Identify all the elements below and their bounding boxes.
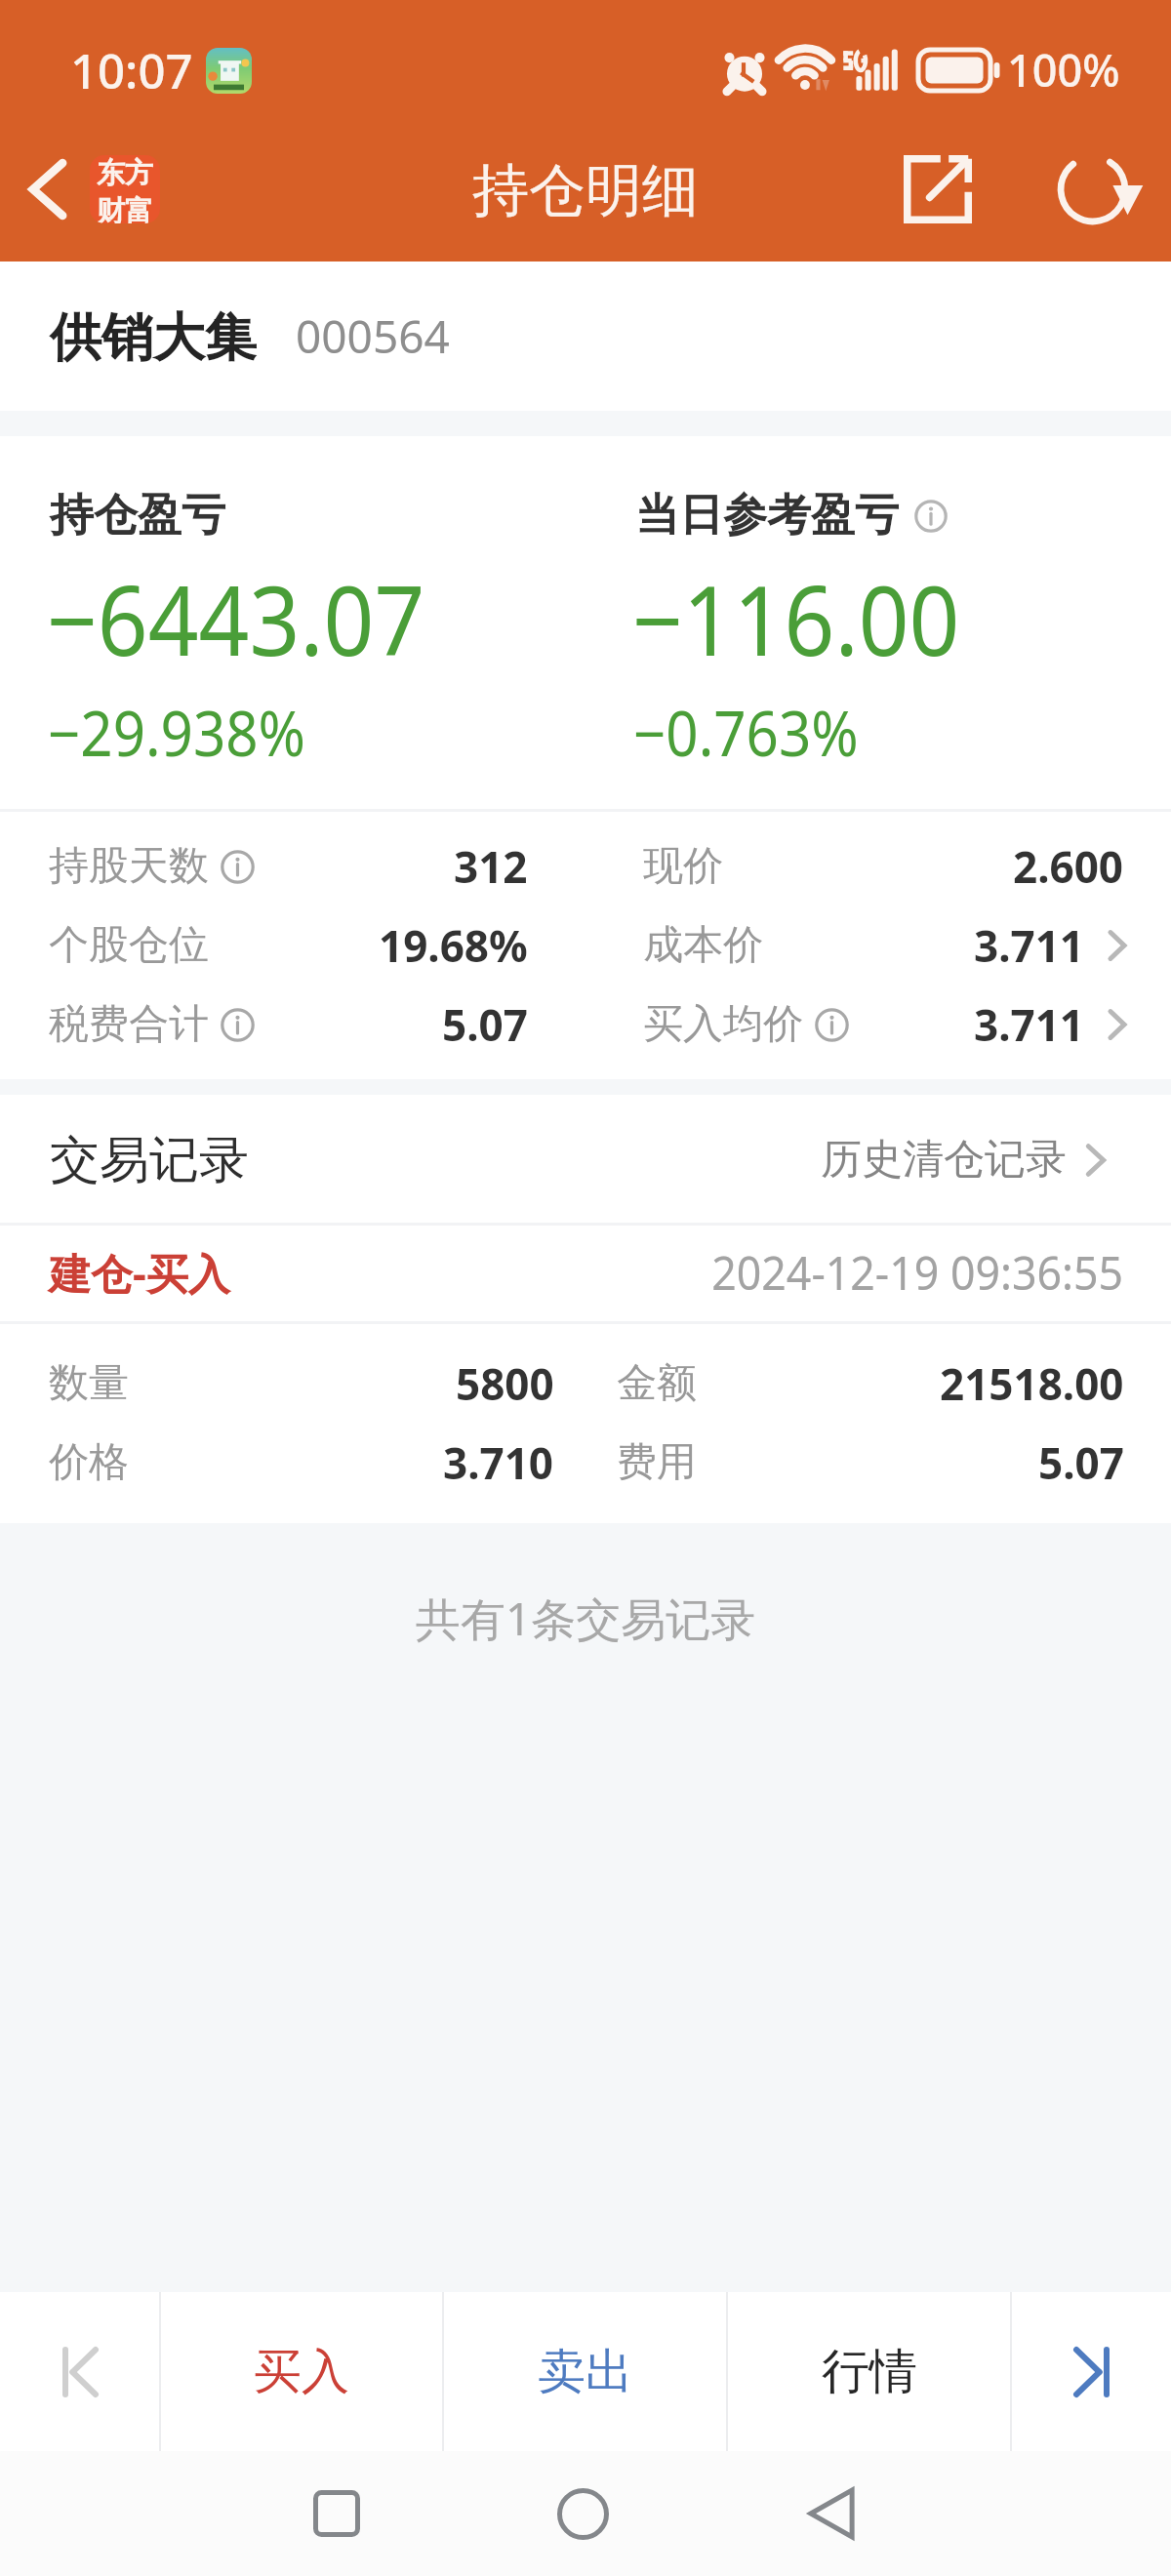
- button[interactable]: Share: [884, 117, 991, 262]
- button[interactable]: Back: [787, 2470, 875, 2557]
- staticText: 买入均价: [643, 999, 803, 1050]
- staticText: 供销大集: [50, 305, 257, 371]
- staticText: 卖出: [538, 2342, 633, 2402]
- staticText: 5.07: [1038, 1433, 1124, 1492]
- staticText: 3.711: [974, 916, 1085, 975]
- staticText: −6443.07: [47, 553, 425, 683]
- staticText: 财富: [97, 193, 153, 223]
- staticText: −29.938%: [48, 691, 306, 775]
- staticText: 历史清仓记录: [821, 1134, 1067, 1186]
- staticText: 成本价: [643, 920, 763, 971]
- staticText: 价格: [49, 1437, 129, 1488]
- button[interactable]: Last page: [1012, 2292, 1171, 2451]
- staticText: 3.711: [974, 995, 1085, 1054]
- button[interactable]: Home: [539, 2470, 626, 2557]
- staticText: 312: [454, 837, 528, 896]
- staticText: 3.710: [443, 1433, 554, 1492]
- staticText: 2024-12-19 09:36:55: [712, 1241, 1124, 1304]
- staticText: 当日参考盈亏: [635, 488, 899, 543]
- staticText: 东方: [97, 155, 153, 191]
- button[interactable]: 行情: [728, 2292, 1010, 2451]
- button[interactable]: 卖出: [444, 2292, 726, 2451]
- staticText: 个股仓位: [49, 920, 209, 971]
- staticText: 2.600: [1013, 837, 1124, 896]
- staticText: 持仓明细: [472, 155, 699, 226]
- staticText: 000564: [296, 305, 450, 367]
- button[interactable]: First page: [0, 2292, 159, 2451]
- staticText: 19.68%: [379, 916, 528, 975]
- staticText: 共有1条交易记录: [416, 1588, 756, 1649]
- staticText: 买入: [254, 2342, 349, 2402]
- button[interactable]: Back: [0, 117, 160, 262]
- staticText: 持仓盈亏: [50, 488, 225, 543]
- staticText: 交易记录: [50, 1129, 249, 1191]
- staticText: 数量: [49, 1358, 129, 1409]
- staticText: 现价: [643, 841, 723, 892]
- staticText: 5800: [456, 1354, 554, 1413]
- staticText: 21518.00: [940, 1354, 1124, 1413]
- staticText: 持股天数: [49, 841, 209, 892]
- staticText: 5.07: [442, 995, 528, 1054]
- staticText: 费用: [617, 1437, 697, 1488]
- button[interactable]: Recent apps: [293, 2470, 381, 2557]
- staticText: 10:07: [70, 38, 193, 103]
- button[interactable]: 买入: [161, 2292, 442, 2451]
- staticText: 金额: [617, 1358, 697, 1409]
- staticText: 建仓-买入: [49, 1244, 230, 1302]
- staticText: 税费合计: [49, 999, 209, 1050]
- staticText: −0.763%: [633, 691, 859, 775]
- button[interactable]: Refresh: [1041, 117, 1154, 262]
- staticText: 100%: [1007, 40, 1120, 100]
- staticText: 行情: [822, 2342, 917, 2402]
- button[interactable]: 历史清仓记录: [821, 1134, 1108, 1186]
- staticText: −116.00: [632, 553, 960, 683]
